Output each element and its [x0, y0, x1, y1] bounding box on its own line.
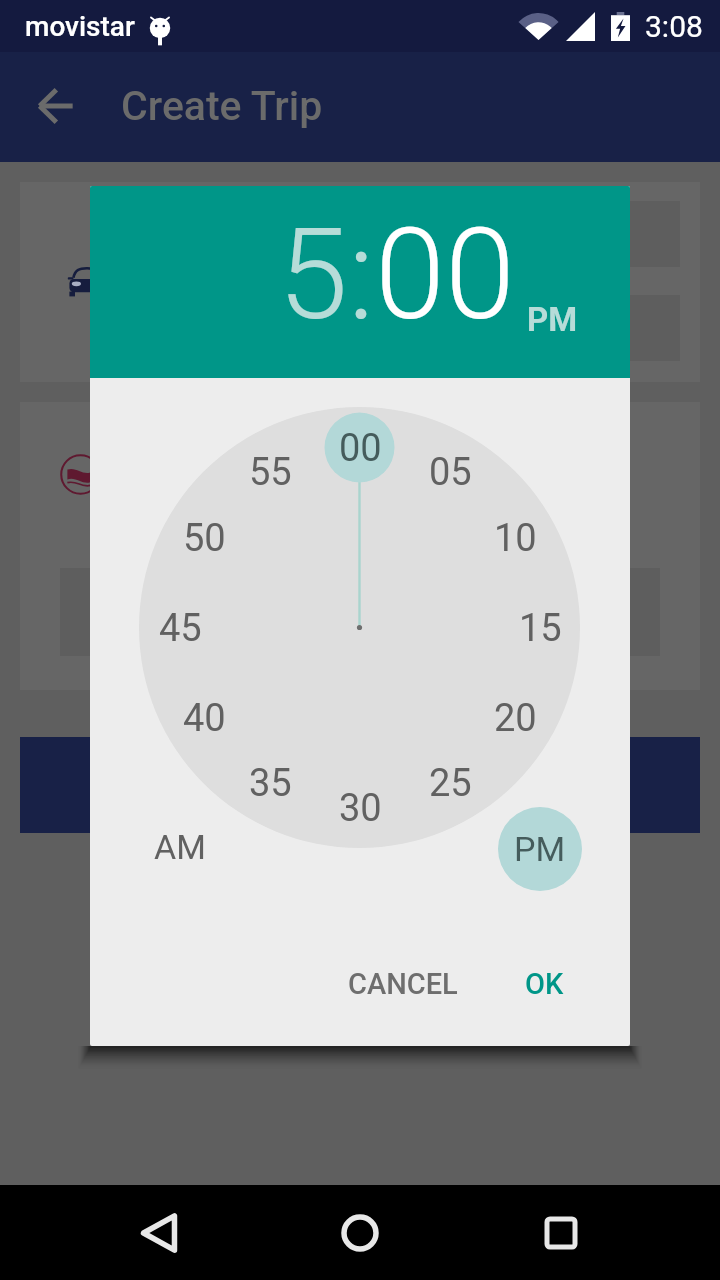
staticText: Create Trip	[121, 82, 323, 130]
button[interactable]: 15	[504, 602, 576, 654]
staticText: 3:08	[645, 9, 703, 44]
button[interactable]: AM	[138, 805, 222, 889]
button[interactable]: 05	[414, 446, 486, 498]
button[interactable]: PM	[498, 807, 582, 891]
button[interactable]: 30	[324, 782, 396, 834]
button[interactable]: CANCEL	[333, 947, 473, 1021]
button[interactable]: PM	[520, 293, 584, 345]
button[interactable]: 10	[479, 512, 551, 564]
staticText: 45	[159, 606, 202, 651]
staticText: OK	[525, 967, 564, 1001]
staticText: movistar	[25, 10, 135, 43]
button[interactable]: Back	[117, 1191, 201, 1275]
button[interactable]: 45	[144, 602, 216, 654]
staticText: 50	[183, 516, 226, 561]
staticText: 05	[429, 450, 472, 495]
button[interactable]: Recent apps	[519, 1191, 603, 1275]
staticText: 10	[494, 516, 537, 561]
staticText: 20	[494, 696, 537, 741]
staticText: 30	[339, 786, 382, 831]
staticText: 35	[249, 761, 292, 806]
button[interactable]: 35	[234, 757, 306, 809]
staticText: 25	[429, 761, 472, 806]
button[interactable]	[20, 402, 700, 690]
button[interactable]: OK	[498, 947, 590, 1021]
button[interactable]: 00	[375, 201, 515, 331]
button[interactable]: 5:	[278, 201, 375, 331]
staticText: 55	[249, 450, 292, 495]
staticText: CANCEL	[348, 967, 458, 1001]
button[interactable]: 25	[414, 757, 486, 809]
staticText: AM	[154, 827, 206, 867]
staticText: 00	[339, 426, 382, 471]
button[interactable]: 20	[479, 692, 551, 744]
button[interactable]	[20, 737, 700, 833]
button[interactable]: Navigate up	[39, 89, 73, 123]
button[interactable]	[20, 182, 700, 382]
staticText: 15	[519, 606, 562, 651]
staticText: PM	[514, 829, 566, 869]
button[interactable]: 50	[168, 512, 240, 564]
button[interactable]: Home	[318, 1191, 402, 1275]
button[interactable]: 55	[234, 446, 306, 498]
staticText: 40	[183, 696, 226, 741]
staticText: PM	[527, 300, 578, 339]
button[interactable]: 00	[324, 422, 396, 474]
button[interactable]: 40	[168, 692, 240, 744]
